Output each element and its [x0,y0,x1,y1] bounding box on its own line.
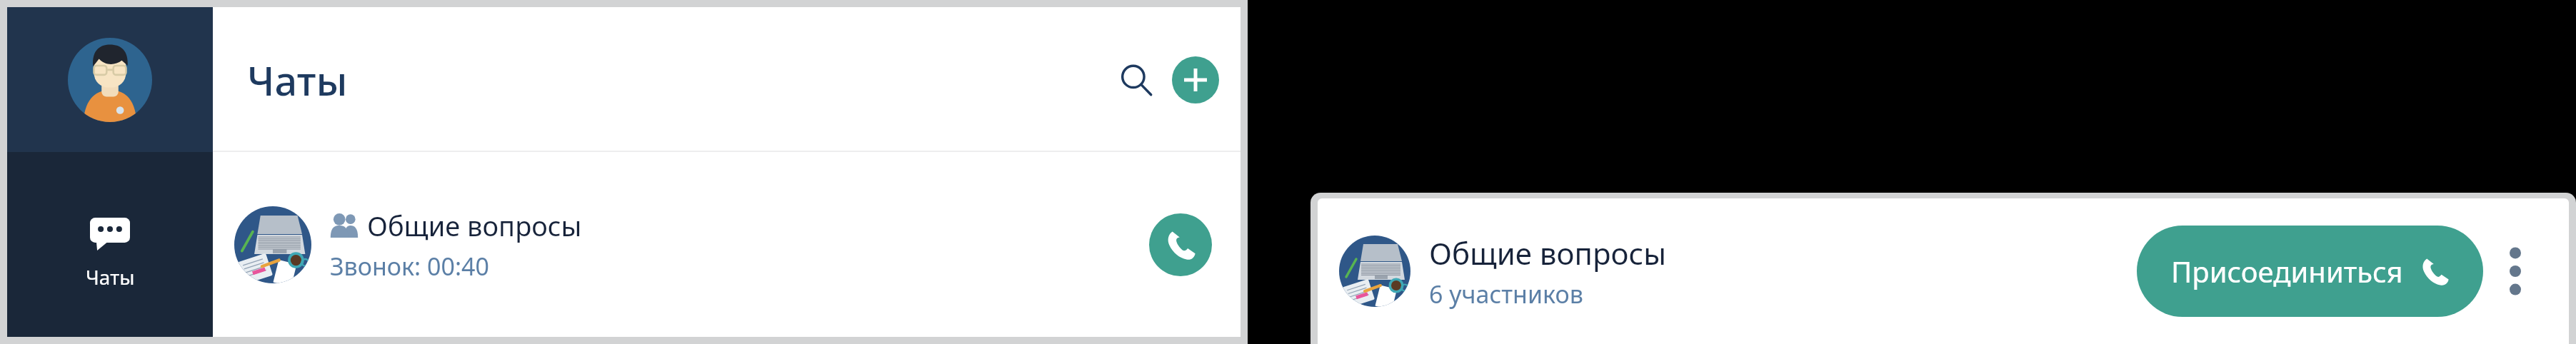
staticText: Звонок: 00:40 [330,250,489,283]
staticText: Присоединиться [2171,252,2403,290]
button[interactable]: More options [2483,198,2547,344]
staticText: Чаты [247,53,348,107]
button[interactable]: Чаты [7,152,213,337]
staticText: Общие вопросы [367,207,582,244]
staticText: Чаты [86,263,135,290]
button[interactable]: Общие вопросы [213,152,1241,337]
staticText: Общие вопросы [1429,233,1667,273]
button[interactable]: Присоединиться [2137,226,2483,317]
button[interactable]: Call [1149,213,1212,276]
button[interactable]: Profile [7,7,213,152]
button[interactable]: Search [1109,53,1163,107]
button[interactable]: New chat [1172,56,1219,103]
staticText: 6 участников [1429,278,1583,310]
